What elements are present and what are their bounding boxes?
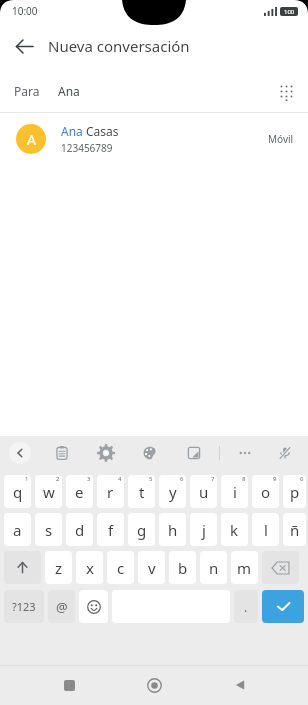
- staticText: 10:00: [12, 4, 38, 18]
- staticText: 4: [118, 475, 122, 483]
- button[interactable]: k: [221, 513, 248, 546]
- staticText: 0: [300, 475, 304, 483]
- button[interactable]: w: [35, 475, 62, 508]
- button[interactable]: .: [234, 590, 258, 623]
- button[interactable]: l: [252, 513, 279, 546]
- staticText: 123456789: [61, 141, 113, 155]
- staticText: b: [178, 558, 188, 578]
- button[interactable]: More: [234, 442, 256, 464]
- staticText: u: [199, 482, 209, 502]
- staticText: 2: [56, 475, 60, 483]
- button[interactable]: f: [97, 513, 124, 546]
- staticText: A: [27, 130, 36, 149]
- button[interactable]: A: [0, 113, 308, 165]
- staticText: Móvil: [268, 132, 294, 146]
- staticText: r: [107, 482, 114, 502]
- button[interactable]: ?123: [4, 590, 44, 623]
- staticText: @: [56, 598, 68, 616]
- button[interactable]: Enter: [262, 590, 304, 623]
- staticText: w: [43, 482, 55, 502]
- staticText: y: [169, 482, 177, 502]
- button[interactable]: Resize: [183, 442, 205, 464]
- button[interactable]: p: [283, 475, 306, 508]
- staticText: Nueva conversación: [48, 36, 190, 56]
- button[interactable]: Emoji: [79, 590, 108, 623]
- staticText: f: [108, 520, 114, 540]
- staticText: Ana Casas: [61, 123, 119, 139]
- button[interactable]: y: [159, 475, 186, 508]
- staticText: o: [261, 482, 271, 502]
- button[interactable]: ñ: [283, 513, 306, 546]
- staticText: q: [13, 482, 23, 502]
- staticText: 5: [149, 475, 153, 483]
- button[interactable]: o: [252, 475, 279, 508]
- staticText: 8: [242, 475, 246, 483]
- button[interactable]: q: [4, 475, 31, 508]
- staticText: Ana: [58, 83, 80, 99]
- button[interactable]: Back: [0, 22, 48, 70]
- staticText: i: [233, 482, 237, 502]
- button[interactable]: Settings: [95, 442, 117, 464]
- button[interactable]: m: [231, 551, 258, 584]
- staticText: p: [290, 482, 300, 502]
- staticText: z: [55, 558, 63, 578]
- staticText: v: [148, 558, 156, 578]
- staticText: 1: [25, 475, 29, 483]
- button[interactable]: v: [138, 551, 165, 584]
- button[interactable]: i: [221, 475, 248, 508]
- button[interactable]: c: [107, 551, 134, 584]
- button[interactable]: Collapse: [9, 442, 31, 464]
- staticText: m: [237, 558, 252, 578]
- staticText: s: [45, 520, 53, 540]
- staticText: n: [209, 558, 219, 578]
- button[interactable]: Theme: [139, 442, 161, 464]
- staticText: 100: [284, 8, 295, 16]
- button[interactable]: Home: [137, 668, 171, 702]
- staticText: 7: [211, 475, 215, 483]
- button[interactable]: Recents: [52, 668, 86, 702]
- button[interactable]: Back: [223, 668, 257, 702]
- button[interactable]: a: [4, 513, 31, 546]
- staticText: l: [264, 520, 268, 540]
- staticText: g: [137, 520, 147, 540]
- staticText: c: [117, 558, 125, 578]
- staticText: a: [13, 520, 22, 540]
- button[interactable]: d: [66, 513, 93, 546]
- button[interactable]: Backspace: [262, 551, 299, 584]
- staticText: k: [230, 520, 239, 540]
- staticText: 3: [87, 475, 91, 483]
- button[interactable]: u: [190, 475, 217, 508]
- button[interactable]: Mic off: [274, 442, 296, 464]
- button[interactable]: Clipboard: [51, 442, 73, 464]
- staticText: h: [168, 520, 178, 540]
- staticText: x: [86, 558, 94, 578]
- button[interactable]: r: [97, 475, 124, 508]
- staticText: e: [75, 482, 84, 502]
- button[interactable]: s: [35, 513, 62, 546]
- button[interactable]: z: [45, 551, 72, 584]
- staticText: 9: [273, 475, 277, 483]
- staticText: .: [244, 599, 248, 615]
- button[interactable]: Shift: [4, 551, 41, 584]
- staticText: j: [202, 520, 206, 540]
- button[interactable]: b: [169, 551, 196, 584]
- staticText: t: [139, 482, 145, 502]
- staticText: ñ: [290, 520, 300, 540]
- staticText: d: [75, 520, 85, 540]
- staticText: Para: [14, 83, 40, 99]
- button[interactable]: e: [66, 475, 93, 508]
- staticText: 6: [180, 475, 184, 483]
- staticText: ?123: [12, 599, 36, 614]
- button[interactable]: t: [128, 475, 155, 508]
- button[interactable]: n: [200, 551, 227, 584]
- button[interactable]: h: [159, 513, 186, 546]
- button[interactable]: g: [128, 513, 155, 546]
- button[interactable]: x: [76, 551, 103, 584]
- button[interactable]: j: [190, 513, 217, 546]
- button[interactable]: @: [48, 590, 75, 623]
- button[interactable]: Dialpad: [264, 70, 308, 112]
